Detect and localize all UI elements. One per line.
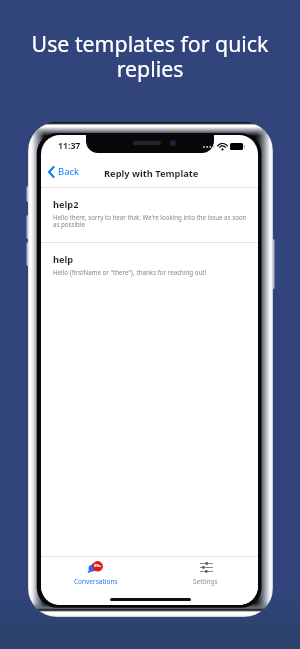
staticText: 99+ [94, 563, 102, 569]
staticText: help [53, 253, 74, 266]
staticText: 11:37 [58, 140, 81, 152]
staticText: Back [58, 165, 80, 178]
button[interactable]: 99+ [41, 557, 149, 587]
button[interactable]: Back [41, 160, 88, 183]
button[interactable]: help [41, 243, 258, 289]
staticText: Hello {firstName or "there"}, thanks for… [53, 268, 207, 276]
staticText: Use templates for quick replies [30, 29, 270, 83]
staticText: Hello there, sorry to hear that. We're l… [53, 213, 250, 229]
staticText: Conversations [74, 577, 118, 586]
button[interactable]: Settings [149, 557, 258, 587]
button[interactable]: help2 [41, 188, 258, 243]
staticText: Settings [193, 577, 218, 586]
staticText: Reply with Template [104, 167, 199, 180]
staticText: help2 [53, 198, 79, 211]
